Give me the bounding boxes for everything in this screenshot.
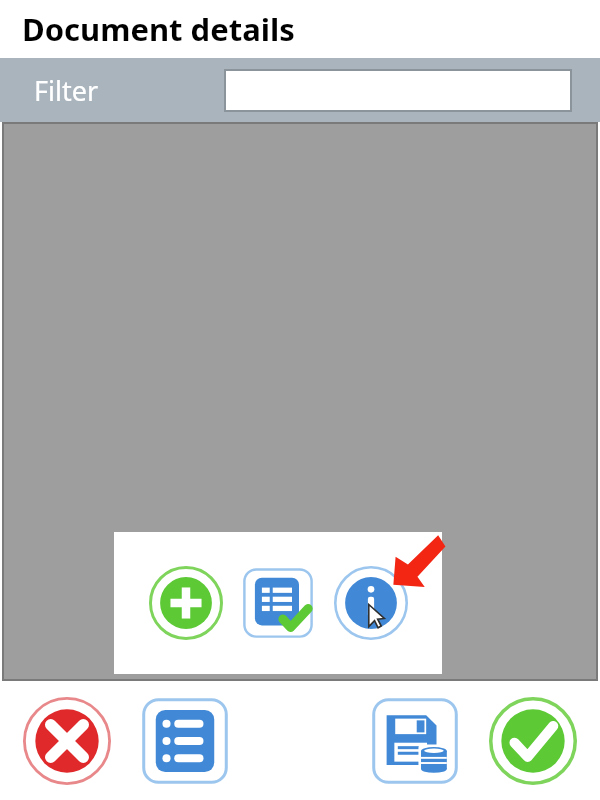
button[interactable]: Cancel (20, 694, 114, 788)
staticText: Document details (22, 8, 295, 50)
button[interactable]: Document list (239, 564, 317, 642)
button[interactable]: Save to database (368, 694, 462, 788)
button[interactable]: Details (332, 564, 410, 642)
button[interactable]: Add (147, 564, 225, 642)
button[interactable]: List (138, 694, 232, 788)
staticText: Filter (34, 72, 99, 109)
button[interactable]: Confirm (486, 694, 580, 788)
